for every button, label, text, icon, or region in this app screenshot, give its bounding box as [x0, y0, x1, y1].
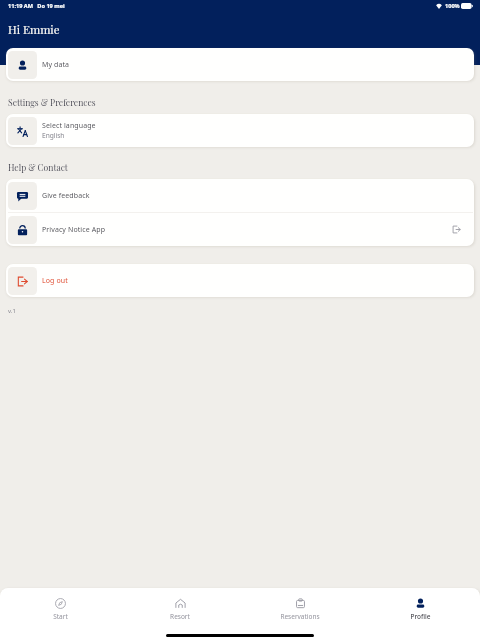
- button[interactable]: My data: [6, 48, 474, 81]
- staticText: 100%: [445, 2, 460, 10]
- staticText: Privacy Notice App: [42, 225, 106, 235]
- button[interactable]: Privacy Notice App: [6, 213, 474, 246]
- button[interactable]: Log out: [6, 264, 474, 297]
- staticText: Give feedback: [42, 191, 90, 201]
- staticText: Help & Contact: [8, 162, 68, 173]
- staticText: Start: [53, 612, 68, 621]
- other: Open external link: [452, 225, 461, 234]
- staticText: Profile: [410, 612, 431, 621]
- staticText: Settings & Preferences: [8, 97, 96, 108]
- staticText: Resort: [170, 612, 190, 621]
- button[interactable]: Profile: [360, 588, 480, 621]
- staticText: My data: [42, 60, 70, 70]
- staticText: Log out: [42, 276, 68, 286]
- button[interactable]: Resort: [120, 588, 240, 621]
- button[interactable]: Give feedback: [6, 179, 474, 212]
- staticText: English: [42, 131, 65, 140]
- staticText: Reservations: [280, 612, 320, 621]
- staticText: Select language: [42, 121, 96, 131]
- staticText: 11:19 AM Do 19 mei: [8, 2, 65, 10]
- staticText: Hi Emmie: [8, 22, 60, 37]
- button[interactable]: Select language: [6, 114, 474, 147]
- button[interactable]: Start: [0, 588, 120, 621]
- button[interactable]: Reservations: [240, 588, 360, 621]
- staticText: v.1: [8, 307, 16, 315]
